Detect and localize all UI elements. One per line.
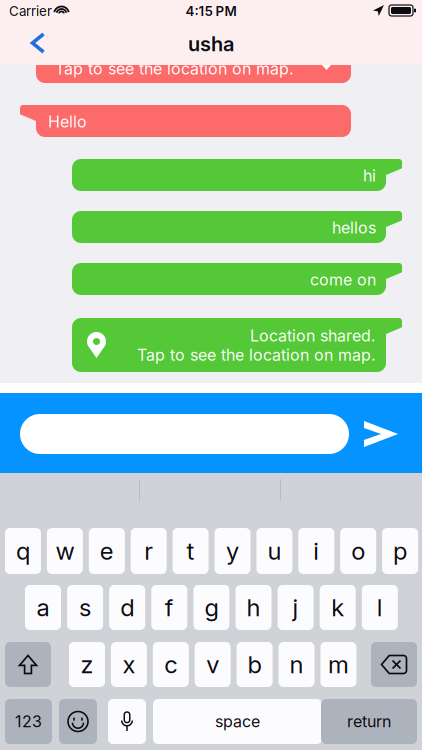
button[interactable]: j	[278, 585, 314, 630]
button[interactable]: Delete	[371, 642, 417, 687]
staticText: v	[206, 650, 219, 679]
staticText: Location shared.	[250, 326, 376, 345]
button[interactable]: s	[67, 585, 103, 630]
button[interactable]: 123	[5, 699, 52, 744]
button[interactable]: q	[5, 528, 41, 574]
staticText: Carrier	[9, 3, 52, 19]
staticText: Hello	[48, 112, 87, 131]
staticText: t	[187, 536, 195, 565]
staticText: i	[313, 536, 319, 565]
button[interactable]: Dictation	[108, 699, 146, 744]
staticText: come on	[310, 270, 376, 289]
staticText: Tap to see the location on map.	[55, 59, 294, 78]
button[interactable]: e	[89, 528, 125, 574]
staticText: z	[80, 650, 93, 679]
button[interactable]: u	[256, 528, 292, 574]
button[interactable]: Message	[20, 414, 349, 454]
staticText: space	[215, 712, 260, 731]
staticText: 4:15 PM	[185, 3, 236, 19]
button[interactable]: Back	[16, 21, 60, 65]
staticText: Tap to see the location on map.	[137, 345, 376, 365]
button[interactable]: l	[362, 585, 398, 630]
button[interactable]: Shift	[5, 642, 51, 687]
button[interactable]: space	[153, 699, 322, 744]
staticText: x	[122, 650, 135, 679]
staticText: hi	[363, 166, 376, 185]
staticText: b	[248, 650, 262, 679]
staticText: usha	[188, 32, 234, 56]
button[interactable]: x	[111, 642, 147, 687]
button[interactable]: y	[214, 528, 250, 574]
staticText: l	[377, 593, 383, 622]
staticText: y	[226, 536, 239, 565]
button[interactable]: i	[298, 528, 334, 574]
button[interactable]: Send	[352, 409, 410, 459]
staticText: o	[351, 536, 365, 565]
button[interactable]: h	[235, 585, 271, 630]
staticText: w	[55, 536, 74, 565]
staticText: a	[36, 593, 49, 622]
button[interactable]: w	[47, 528, 83, 574]
button[interactable]: k	[320, 585, 356, 630]
button[interactable]: return	[321, 699, 417, 744]
button[interactable]: o	[340, 528, 376, 574]
button[interactable]: v	[195, 642, 231, 687]
button[interactable]: n	[278, 642, 314, 687]
button[interactable]: f	[151, 585, 187, 630]
button[interactable]: t	[173, 528, 209, 574]
staticText: s	[79, 593, 91, 622]
staticText: q	[16, 536, 30, 565]
staticText: hellos	[332, 218, 376, 237]
button[interactable]: b	[237, 642, 273, 687]
button[interactable]: z	[69, 642, 105, 687]
staticText: m	[328, 650, 349, 679]
button[interactable]: p	[382, 528, 418, 574]
staticText: d	[120, 593, 134, 622]
staticText: p	[393, 536, 407, 565]
staticText: u	[267, 536, 281, 565]
staticText: e	[100, 536, 114, 565]
button[interactable]: a	[25, 585, 61, 630]
staticText: g	[204, 593, 218, 622]
staticText: f	[165, 593, 174, 622]
staticText: 123	[15, 712, 42, 731]
button[interactable]: r	[131, 528, 167, 574]
button[interactable]: m	[320, 642, 356, 687]
button[interactable]: c	[153, 642, 189, 687]
staticText: k	[331, 593, 344, 622]
button[interactable]: d	[109, 585, 145, 630]
staticText: n	[289, 650, 303, 679]
staticText: j	[293, 593, 299, 622]
staticText: return	[347, 712, 391, 731]
staticText: r	[144, 536, 153, 565]
staticText: h	[246, 593, 260, 622]
staticText: c	[164, 650, 177, 679]
button[interactable]: Emoji	[59, 699, 97, 744]
button[interactable]: g	[193, 585, 229, 630]
